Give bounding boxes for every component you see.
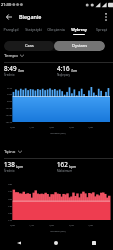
button[interactable]: Wykresy	[67, 24, 90, 35]
staticText: Maksimum	[57, 169, 73, 173]
button[interactable]: Przegląd	[0, 24, 22, 35]
staticText: Najlepszy	[57, 73, 70, 77]
staticText: Dystans (km)	[50, 131, 66, 134]
staticText: Średnio	[4, 169, 15, 173]
button[interactable]: Recent apps	[75, 236, 113, 250]
button[interactable]: Back	[0, 236, 37, 250]
staticText: bpm	[69, 164, 77, 168]
staticText: Okrążenia	[47, 27, 65, 32]
staticText: 130	[7, 211, 12, 214]
staticText: Tempo	[4, 52, 18, 58]
button[interactable]: Okrążenia	[44, 24, 67, 35]
button[interactable]: Tempo	[4, 52, 24, 58]
staticText: 7:04	[7, 92, 12, 95]
staticText: 7,00	[88, 125, 93, 128]
staticText: 1,75	[29, 125, 34, 128]
staticText: Tętno	[4, 148, 16, 154]
staticText: Dystans	[72, 43, 88, 49]
staticText: 190	[7, 182, 12, 185]
staticText: 12:40	[5, 106, 12, 109]
staticText: 3,50	[49, 223, 54, 226]
staticText: 175	[7, 189, 12, 192]
staticText: bpm	[16, 164, 24, 168]
staticText: 9:52	[7, 99, 12, 102]
staticText: 162	[57, 160, 68, 169]
button[interactable]: Tętno	[4, 148, 22, 154]
staticText: Dystans (km)	[50, 229, 66, 232]
staticText: 5,25	[69, 223, 74, 226]
staticText: 3,50	[49, 125, 54, 128]
staticText: Czas	[25, 43, 34, 49]
staticText: 0,00	[10, 125, 15, 128]
staticText: 0,00	[10, 223, 15, 226]
button[interactable]: Czas	[4, 41, 54, 51]
staticText: Przegląd	[3, 27, 19, 32]
staticText: 8:49	[4, 64, 17, 73]
staticText: 5,25	[69, 125, 74, 128]
staticText: Statystyki	[25, 27, 42, 32]
button[interactable]: Back	[2, 10, 15, 23]
staticText: 4:16	[7, 86, 12, 89]
staticText: 145	[7, 204, 12, 207]
staticText: 4:16	[57, 64, 70, 73]
button[interactable]: Home	[37, 236, 75, 250]
staticText: /km	[71, 68, 78, 72]
button[interactable]: More options	[99, 10, 112, 23]
staticText: 18:16	[5, 120, 12, 123]
staticText: 15:28	[5, 113, 12, 116]
staticText: 115	[7, 218, 12, 221]
staticText: 1,75	[29, 223, 34, 226]
staticText: Bieganie	[19, 13, 42, 20]
staticText: 138	[4, 160, 15, 169]
button[interactable]: Statystyki	[22, 24, 44, 35]
staticText: /km	[18, 68, 25, 72]
button[interactable]: Sprzęt	[90, 24, 113, 35]
button[interactable]: Dystans	[54, 41, 105, 51]
staticText: Sprzęt	[96, 27, 107, 32]
staticText: 160	[7, 197, 12, 200]
staticText: Wykresy	[71, 27, 87, 32]
staticText: 7,00	[88, 223, 93, 226]
staticText: Średnio	[4, 73, 15, 77]
staticText: 21:35	[1, 2, 11, 7]
